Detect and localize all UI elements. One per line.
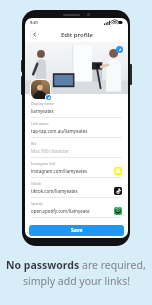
staticText: liamyeates xyxy=(31,108,54,114)
button[interactable]: Link name xyxy=(31,121,122,141)
staticText: are required, xyxy=(82,258,146,272)
staticText: open.spotify.com/liamyeate xyxy=(31,208,114,214)
staticText: simply add your links! xyxy=(23,274,130,288)
button[interactable]: Spotify xyxy=(31,201,122,221)
staticText: Tiktok xyxy=(31,181,42,186)
button[interactable]: Instagram link xyxy=(31,161,122,181)
button[interactable]: Edit profile photo xyxy=(46,95,51,100)
button[interactable]: Edit cover photo xyxy=(116,46,123,53)
staticText: tap-tap.com.au/liamyeates xyxy=(31,128,88,134)
staticText: Spotify xyxy=(31,201,43,206)
staticText: Edit profile xyxy=(61,31,93,39)
staticText: Display name xyxy=(31,101,54,106)
staticText: tiktok.com/liamyeates xyxy=(31,188,114,194)
staticText: Bio xyxy=(31,141,37,146)
staticText: Link name xyxy=(31,121,49,126)
button[interactable]: Spotify xyxy=(114,207,122,215)
staticText: Instagram link xyxy=(31,161,56,166)
staticText: Save xyxy=(71,227,83,234)
button[interactable]: Display name xyxy=(31,101,122,121)
staticText: 9:41 xyxy=(30,20,38,25)
staticText: instagram.com/liamyeates xyxy=(31,168,114,174)
button[interactable]: TikTok xyxy=(114,187,122,195)
button[interactable]: Profile photo xyxy=(31,80,50,99)
button[interactable]: Instagram xyxy=(114,167,122,175)
button[interactable]: Save xyxy=(29,225,124,236)
staticText: No passwords xyxy=(6,258,82,272)
button[interactable]: Tiktok xyxy=(31,181,122,201)
staticText: Max 500 character xyxy=(31,148,70,154)
button[interactable]: Back xyxy=(30,30,39,39)
button[interactable]: Bio xyxy=(31,141,122,161)
